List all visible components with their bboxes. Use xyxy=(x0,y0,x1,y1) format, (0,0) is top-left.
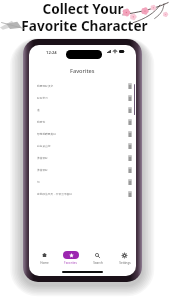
staticText: 我要写好汉字 xyxy=(37,84,54,87)
button[interactable]: 有我的法无天，不管云平很好 xyxy=(29,187,136,199)
button[interactable]: 句 xyxy=(29,175,136,187)
button[interactable]: Settings xyxy=(111,246,136,268)
button[interactable]: Home xyxy=(31,246,57,268)
staticText: Settings xyxy=(119,261,131,265)
staticText: 养基管好 xyxy=(37,156,48,159)
button[interactable]: 我要写好汉字 xyxy=(29,79,136,91)
button[interactable]: Favorites xyxy=(57,246,84,268)
staticText: Favorite Character xyxy=(21,16,148,35)
button[interactable]: Delete xyxy=(126,118,133,125)
button[interactable]: 好好学习 xyxy=(29,91,136,103)
button[interactable]: 养基管好 xyxy=(29,163,136,175)
button[interactable]: Delete xyxy=(126,142,133,149)
button[interactable]: 我爱你 xyxy=(29,115,136,127)
staticText: Favorites xyxy=(70,67,95,75)
button[interactable]: Delete xyxy=(126,94,133,101)
button[interactable]: Search xyxy=(84,246,111,268)
button[interactable]: 智慧受赠要美好 xyxy=(29,127,136,139)
staticText: Favorites xyxy=(64,261,77,265)
staticText: 12:24 xyxy=(46,50,57,56)
button[interactable]: Favorites xyxy=(29,64,136,78)
button[interactable]: Delete xyxy=(126,190,133,197)
staticText: 句 xyxy=(37,180,40,183)
button[interactable]: Delete xyxy=(126,130,133,137)
button[interactable]: 养基管好 xyxy=(29,151,136,163)
staticText: 我爱你 xyxy=(37,120,46,123)
staticText: 养基管好 xyxy=(37,168,48,171)
staticText: Collect Your xyxy=(42,0,124,18)
button[interactable]: Delete xyxy=(126,166,133,173)
staticText: 好好学习 xyxy=(37,96,48,99)
button[interactable]: Delete xyxy=(126,154,133,161)
button[interactable]: Delete xyxy=(126,82,133,89)
button[interactable]: Delete xyxy=(126,106,133,113)
button[interactable]: Delete xyxy=(126,178,133,185)
staticText: 智慧受赠要美好 xyxy=(37,132,56,135)
button[interactable]: 道 xyxy=(29,103,136,115)
staticText: Home xyxy=(40,261,49,265)
staticText: 有我的法无天，不管云平很好 xyxy=(37,192,72,195)
staticText: 道 xyxy=(37,108,40,111)
staticText: Search xyxy=(93,261,103,265)
staticText: 白白朵山河 xyxy=(37,144,51,147)
button[interactable]: 白白朵山河 xyxy=(29,139,136,151)
